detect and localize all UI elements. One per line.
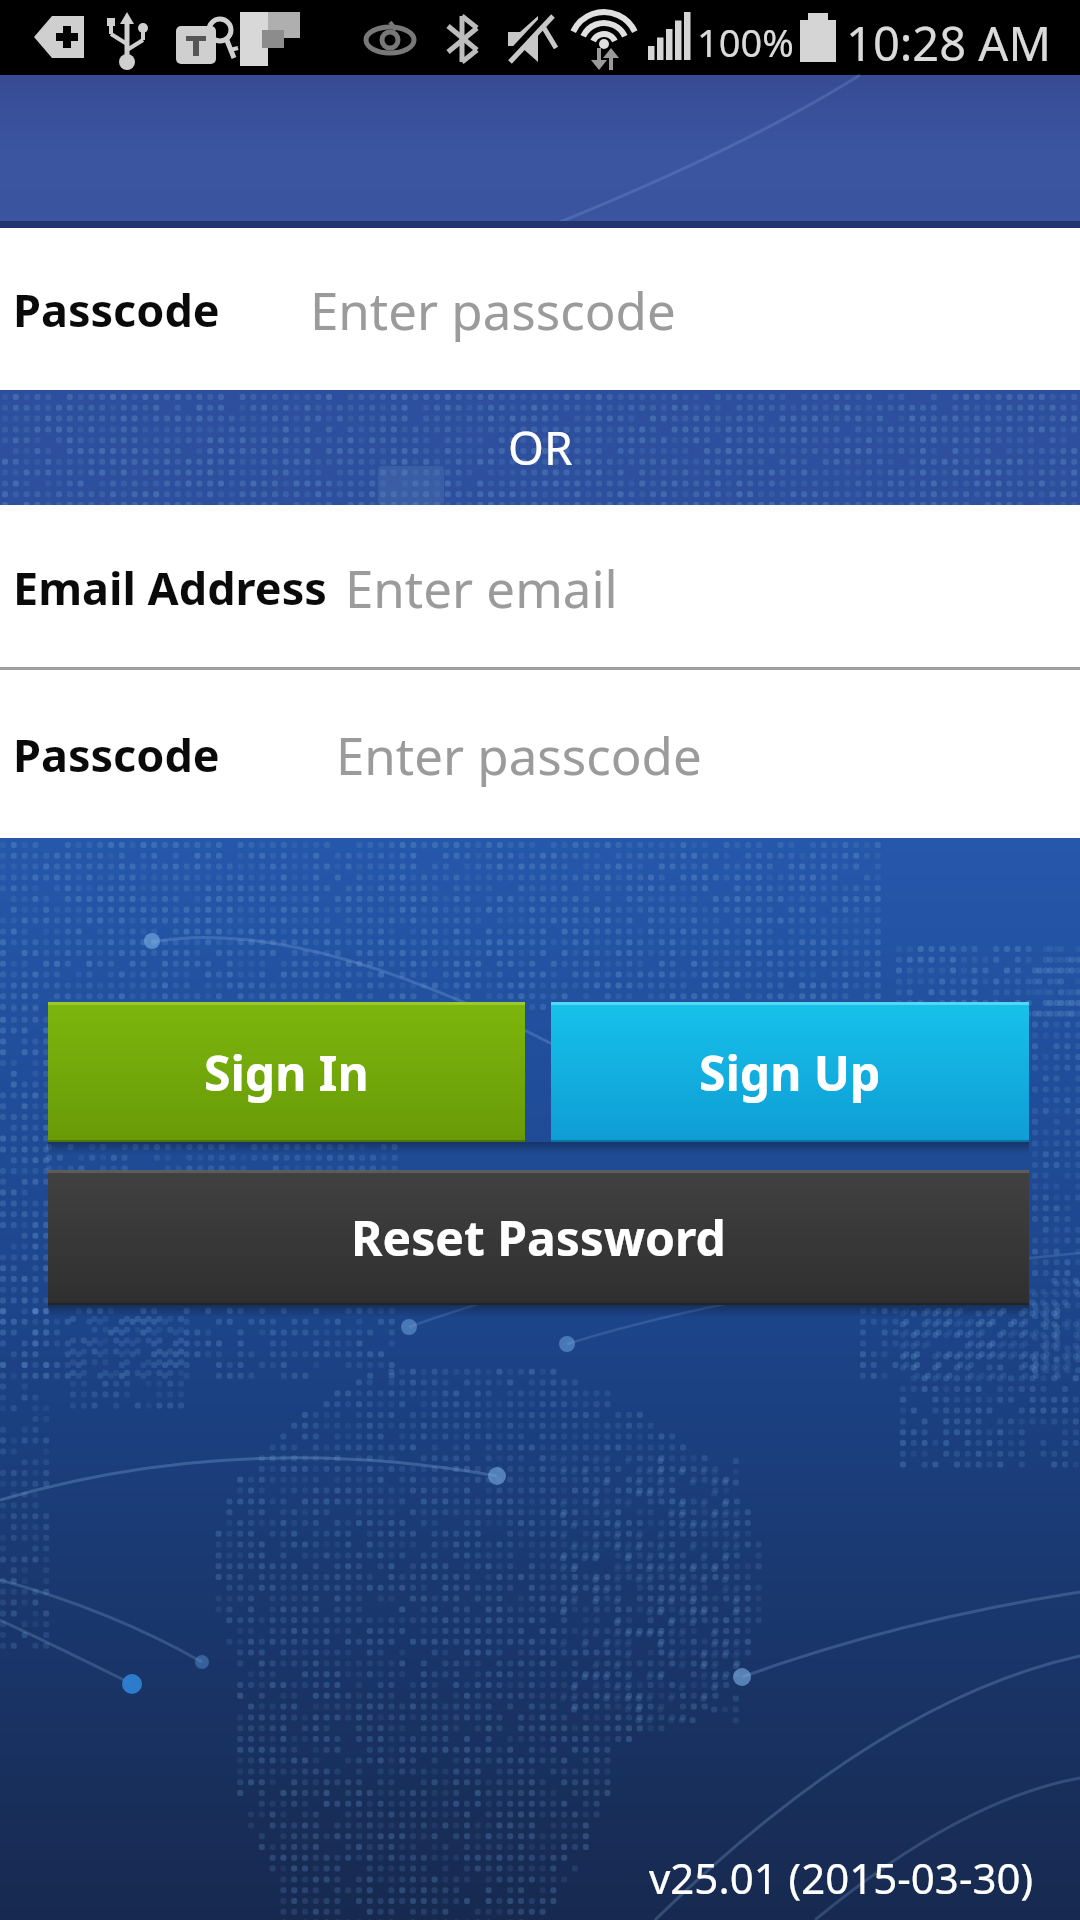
button[interactable]: Passcode: [0, 670, 1080, 838]
staticText: Email Address: [13, 557, 327, 618]
button[interactable]: Sign Up: [551, 1002, 1029, 1142]
staticText: 100%: [697, 16, 794, 68]
staticText: v25.01 (2015-03-30): [649, 1849, 1034, 1906]
button[interactable]: Reset Password: [48, 1170, 1029, 1305]
staticText: Passcode: [13, 724, 220, 785]
staticText: Enter passcode: [310, 275, 676, 344]
staticText: Passcode: [13, 279, 220, 340]
button[interactable]: Email Address: [0, 505, 1080, 670]
staticText: 10:28 AM: [846, 11, 1052, 75]
button[interactable]: Sign In: [48, 1002, 525, 1142]
staticText: Reset Password: [351, 1205, 726, 1270]
staticText: Enter passcode: [336, 720, 702, 789]
staticText: Sign In: [204, 1040, 369, 1105]
button[interactable]: Passcode: [0, 228, 1080, 390]
staticText: Enter email: [345, 553, 618, 622]
staticText: OR: [508, 416, 573, 479]
staticText: Sign Up: [699, 1040, 881, 1105]
